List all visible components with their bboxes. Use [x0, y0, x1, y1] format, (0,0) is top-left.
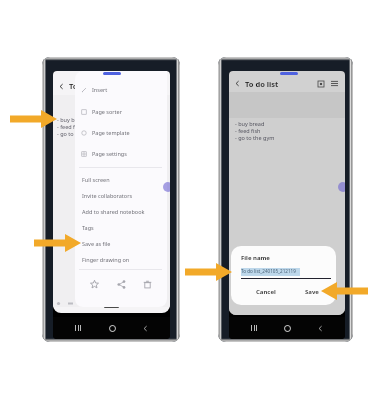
button[interactable]: Pen [338, 182, 345, 192]
button[interactable]: Add to shared notebook [75, 204, 167, 218]
staticText: Page settings [92, 150, 127, 157]
button[interactable]: Invite collaborators [75, 188, 167, 202]
button[interactable]: Back [312, 320, 328, 336]
staticText: File name [241, 254, 270, 262]
button[interactable]: Back [137, 320, 153, 336]
button[interactable]: Save as file [75, 236, 167, 250]
staticText: - buy bread [57, 116, 87, 123]
button[interactable]: Save [297, 285, 327, 299]
button[interactable]: Page sorter [75, 104, 167, 118]
button[interactable]: Page template [75, 125, 167, 139]
button[interactable]: Share [114, 277, 129, 292]
button[interactable]: Pen [163, 182, 170, 192]
button[interactable]: Cancel [250, 285, 282, 299]
staticText: Page sorter [92, 108, 122, 115]
staticText: To do list [245, 79, 279, 89]
button[interactable]: Home [279, 320, 295, 336]
staticText: Page template [92, 129, 130, 136]
staticText: - feed fish [57, 123, 83, 130]
staticText: Save as file [82, 240, 111, 247]
button[interactable]: Finger drawing on [75, 252, 167, 266]
button[interactable]: Recents [246, 320, 262, 336]
button[interactable]: Recents [70, 320, 86, 336]
button[interactable]: More options [329, 78, 340, 89]
staticText: Insert [92, 86, 108, 93]
staticText: To do list_240105_212119 [241, 268, 296, 274]
button[interactable]: Delete [140, 277, 155, 292]
staticText: To do list [69, 81, 103, 91]
button[interactable]: Insert [75, 82, 167, 96]
staticText: Add to shared notebook [82, 208, 145, 215]
staticText: Full screen [82, 176, 110, 183]
staticText: Finger drawing on [82, 256, 130, 263]
button[interactable]: Page settings [75, 146, 167, 160]
button[interactable]: Full screen [75, 172, 167, 186]
staticText: - buy bread [235, 120, 265, 127]
staticText: Save [305, 288, 319, 296]
staticText: - feed fish [235, 127, 261, 134]
button[interactable]: Home [104, 320, 120, 336]
staticText: Cancel [256, 288, 276, 296]
staticText: Tags [82, 224, 94, 231]
button[interactable]: Save [315, 78, 326, 89]
button[interactable]: Favourite [87, 277, 102, 292]
staticText: - go to the gym [235, 134, 275, 141]
staticText: - go to the gym [57, 130, 97, 137]
staticText: Invite collaborators [82, 192, 133, 199]
button[interactable]: Tags [75, 220, 167, 234]
